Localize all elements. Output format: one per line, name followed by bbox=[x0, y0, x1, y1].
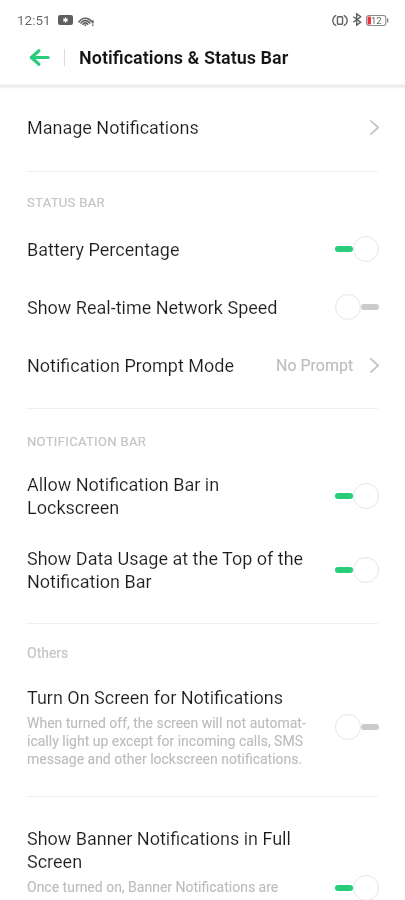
button[interactable]: Allow Notification Bar in Lockscreen bbox=[0, 459, 405, 533]
button[interactable]: Enabled bbox=[335, 557, 379, 583]
staticText: Turn On Screen for Notifications bbox=[27, 686, 284, 709]
staticText: 12:51 bbox=[17, 12, 51, 28]
staticText: Battery Percentage bbox=[27, 238, 323, 261]
button[interactable]: Disabled bbox=[335, 294, 379, 320]
staticText: No Prompt bbox=[276, 355, 354, 375]
staticText: STATUS BAR bbox=[27, 195, 105, 210]
button[interactable]: Enabled bbox=[335, 875, 379, 900]
staticText: NOTIFICATION BAR bbox=[27, 434, 147, 449]
staticText: Once turned on, Banner Notifications are bbox=[27, 878, 279, 896]
staticText: Show Data Usage at the Top of the Notifi… bbox=[27, 547, 323, 593]
button[interactable]: Show Banner Notifications in Full Screen bbox=[0, 813, 405, 900]
staticText: Manage Notifications bbox=[27, 116, 370, 139]
staticText: When turned off, the screen will not aut… bbox=[27, 714, 306, 768]
button[interactable]: Notification Prompt Mode bbox=[0, 336, 405, 394]
button[interactable]: Show Data Usage at the Top of the Notifi… bbox=[0, 533, 405, 607]
button[interactable]: Show Real-time Network Speed bbox=[0, 278, 405, 336]
staticText: Allow Notification Bar in Lockscreen bbox=[27, 473, 323, 519]
staticText: Notifications & Status Bar bbox=[79, 46, 289, 69]
staticText: Notification Prompt Mode bbox=[27, 354, 276, 377]
staticText: 12 bbox=[371, 15, 382, 26]
button[interactable]: Back bbox=[17, 35, 62, 79]
staticText: Show Banner Notifications in Full Screen bbox=[27, 827, 291, 873]
button[interactable]: Disabled bbox=[335, 714, 379, 740]
button[interactable]: Enabled bbox=[335, 483, 379, 509]
button[interactable]: Manage Notifications bbox=[0, 98, 405, 156]
button[interactable]: Enabled bbox=[335, 236, 379, 262]
staticText: Others bbox=[27, 644, 69, 662]
button[interactable]: Battery Percentage bbox=[0, 220, 405, 278]
button[interactable]: Turn On Screen for Notifications bbox=[0, 672, 405, 782]
staticText: Show Real-time Network Speed bbox=[27, 296, 323, 319]
